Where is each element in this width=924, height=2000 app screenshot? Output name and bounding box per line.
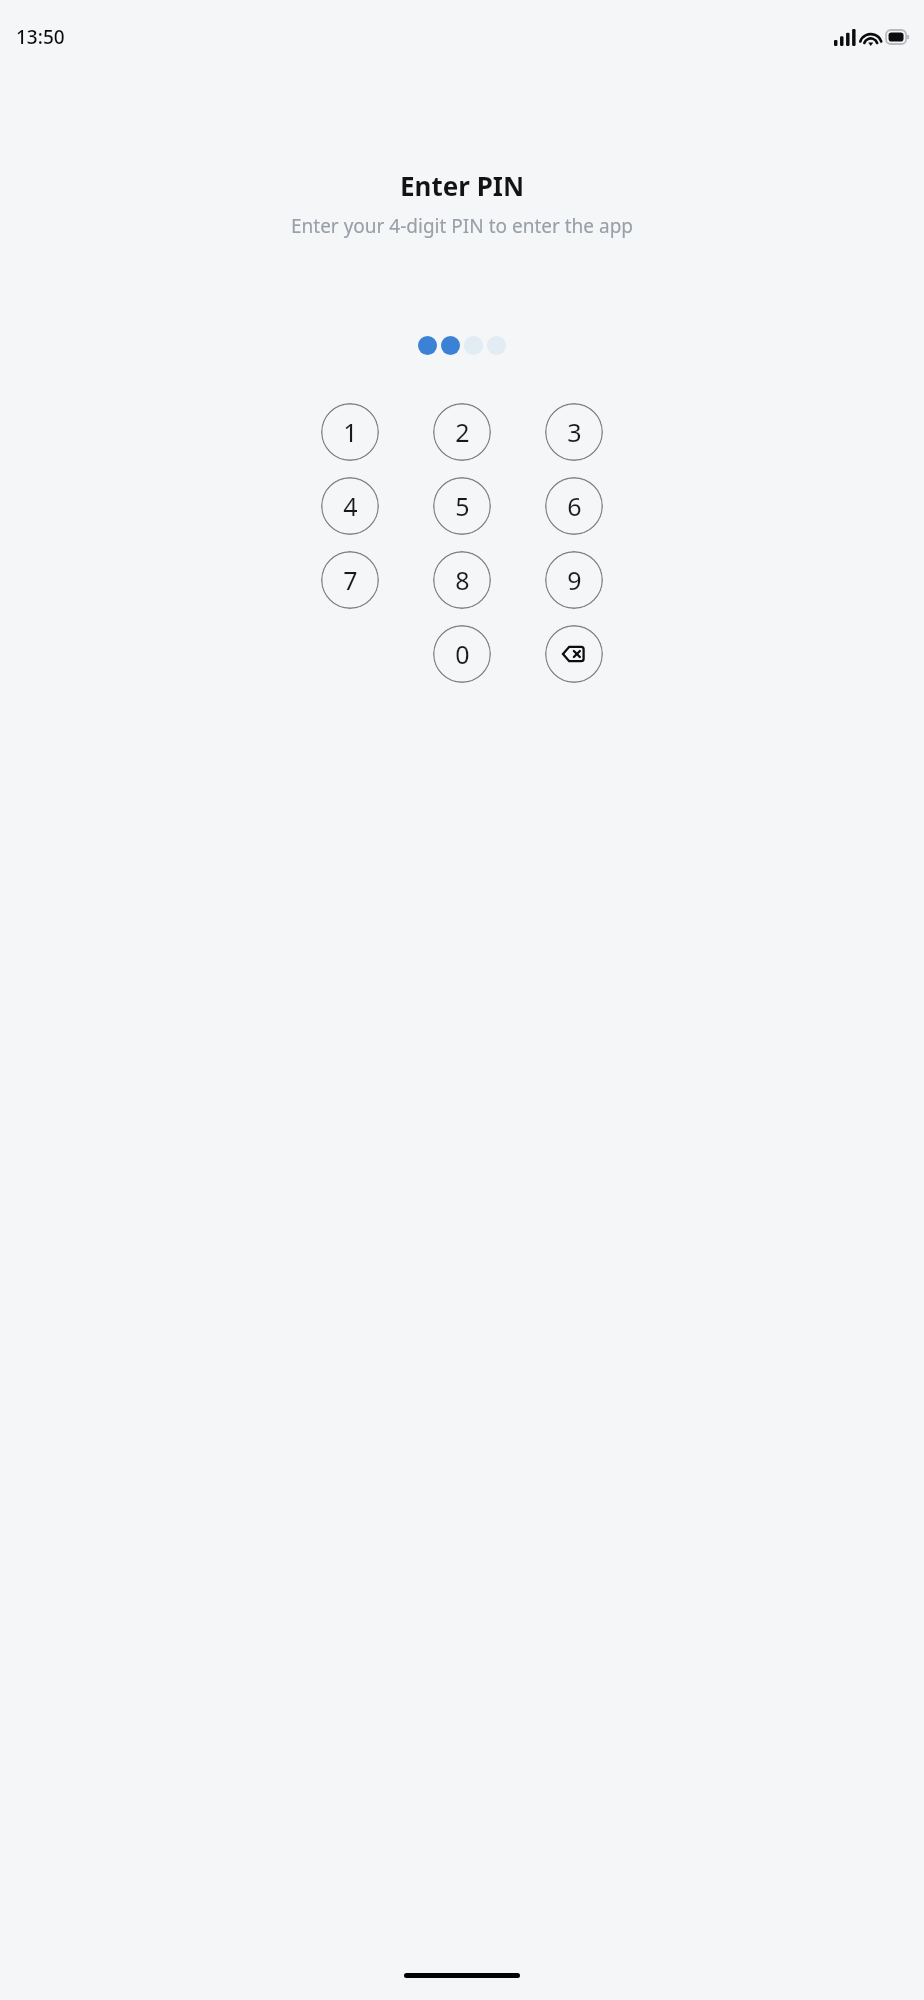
staticText: 6 bbox=[567, 489, 582, 523]
staticText: 9 bbox=[567, 563, 582, 597]
staticText: 7 bbox=[343, 563, 358, 597]
staticText: 2 bbox=[455, 415, 470, 449]
staticText: 1 bbox=[343, 415, 358, 449]
staticText: 4 bbox=[343, 489, 358, 523]
staticText: 0 bbox=[455, 637, 470, 671]
button[interactable]: 5 bbox=[433, 477, 491, 535]
button[interactable]: 7 bbox=[321, 551, 379, 609]
button[interactable]: 6 bbox=[545, 477, 603, 535]
button[interactable]: 9 bbox=[545, 551, 603, 609]
button[interactable]: 4 bbox=[321, 477, 379, 535]
button[interactable]: Backspace bbox=[545, 625, 603, 683]
staticText: 5 bbox=[455, 489, 470, 523]
button[interactable]: 2 bbox=[433, 403, 491, 461]
button[interactable]: 0 bbox=[433, 625, 491, 683]
staticText: 8 bbox=[455, 563, 470, 597]
button[interactable]: 3 bbox=[545, 403, 603, 461]
staticText: 13:50 bbox=[16, 24, 65, 50]
staticText: Enter PIN bbox=[0, 168, 924, 203]
staticText: 3 bbox=[567, 415, 582, 449]
button[interactable]: 8 bbox=[433, 551, 491, 609]
button[interactable]: 1 bbox=[321, 403, 379, 461]
staticText: Enter your 4-digit PIN to enter the app bbox=[0, 213, 924, 239]
